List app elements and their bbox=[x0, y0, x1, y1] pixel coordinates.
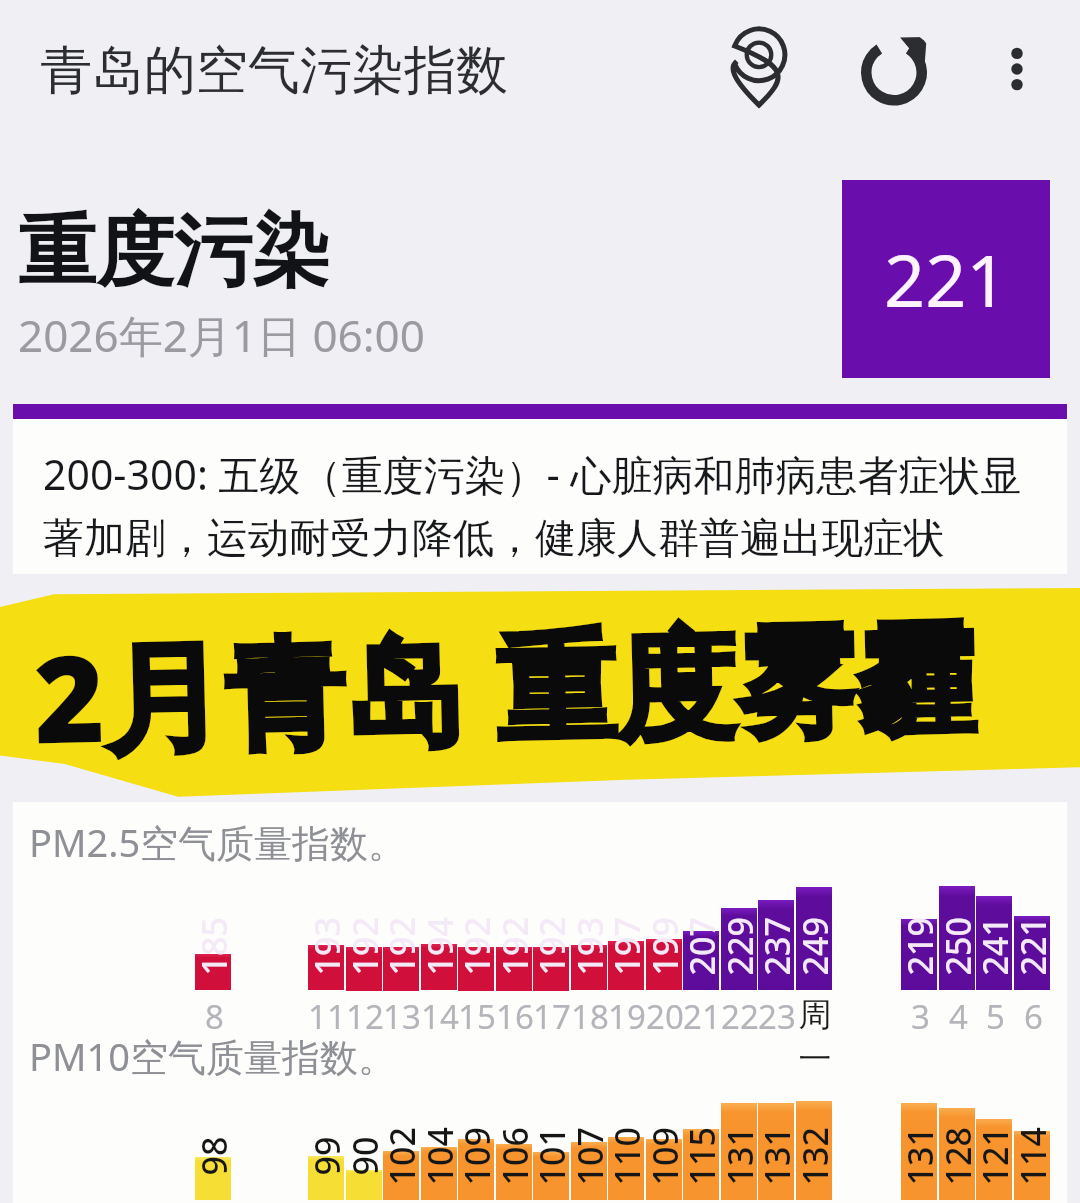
staticText: 250 bbox=[934, 916, 980, 975]
staticText: 192 bbox=[453, 916, 499, 975]
staticText: 98 bbox=[190, 1136, 236, 1175]
staticText: 114 bbox=[1009, 1126, 1055, 1185]
staticText: 107 bbox=[566, 1126, 612, 1185]
staticText: 192 bbox=[491, 916, 537, 975]
staticText: 109 bbox=[453, 1126, 499, 1185]
staticText: 192 bbox=[341, 916, 387, 975]
staticText: PM2.5空气质量指数。 bbox=[29, 816, 407, 868]
staticText: 128 bbox=[934, 1126, 980, 1185]
staticText: 185 bbox=[190, 916, 236, 975]
staticText: 221 bbox=[884, 230, 1008, 328]
staticText: 17 bbox=[533, 994, 571, 1039]
staticText: 237 bbox=[753, 916, 799, 975]
staticText: 重度污染 bbox=[18, 203, 330, 301]
staticText: 131 bbox=[753, 1126, 799, 1185]
staticText: 132 bbox=[791, 1126, 837, 1185]
staticText: 周一 bbox=[786, 994, 844, 1080]
staticText: 22 bbox=[721, 994, 759, 1039]
staticText: 199 bbox=[641, 916, 687, 975]
staticText: 192 bbox=[528, 916, 574, 975]
staticText: 16 bbox=[496, 994, 534, 1039]
staticText: 青岛的空气污染指数 bbox=[40, 38, 508, 104]
staticText: 219 bbox=[896, 916, 942, 975]
staticText: 3 bbox=[911, 994, 930, 1039]
staticText: 19 bbox=[608, 994, 646, 1039]
button[interactable]: Location bbox=[716, 26, 802, 112]
staticText: 249 bbox=[791, 916, 837, 975]
staticText: 12 bbox=[346, 994, 384, 1039]
staticText: 207 bbox=[678, 916, 724, 975]
staticText: 115 bbox=[678, 1126, 724, 1185]
staticText: 221 bbox=[1009, 916, 1055, 975]
staticText: 106 bbox=[491, 1126, 537, 1185]
button[interactable]: PM2.5空气质量指数。 bbox=[13, 802, 1067, 1203]
staticText: 109 bbox=[641, 1126, 687, 1185]
staticText: 2月青岛 重度雾霾 bbox=[32, 592, 978, 779]
staticText: 194 bbox=[416, 916, 462, 975]
staticText: 5 bbox=[986, 994, 1005, 1039]
staticText: 6 bbox=[1024, 994, 1043, 1039]
button[interactable]: Refresh bbox=[852, 28, 936, 112]
staticText: 23 bbox=[758, 994, 796, 1039]
staticText: 13 bbox=[383, 994, 421, 1039]
staticText: 192 bbox=[378, 916, 424, 975]
staticText: 131 bbox=[716, 1126, 762, 1185]
staticText: PM10空气质量指数。 bbox=[29, 1030, 396, 1082]
staticText: 193 bbox=[303, 916, 349, 975]
staticText: 102 bbox=[378, 1126, 424, 1185]
staticText: 241 bbox=[971, 916, 1017, 975]
button[interactable]: 200-300: 五级（重度污染）- 心脏病和肺病患者症状显著加剧，运动耐受力降… bbox=[13, 404, 1067, 574]
staticText: 4 bbox=[949, 994, 968, 1039]
staticText: 18 bbox=[571, 994, 609, 1039]
staticText: 121 bbox=[971, 1126, 1017, 1185]
staticText: 90 bbox=[341, 1136, 387, 1175]
staticText: 104 bbox=[416, 1126, 462, 1185]
staticText: 131 bbox=[896, 1126, 942, 1185]
staticText: 14 bbox=[421, 994, 459, 1039]
staticText: 193 bbox=[566, 916, 612, 975]
staticText: 110 bbox=[603, 1126, 649, 1185]
staticText: 200-300: 五级（重度污染）- 心脏病和肺病患者症状显著加剧，运动耐受力降… bbox=[43, 446, 1053, 564]
staticText: 11 bbox=[308, 994, 346, 1039]
staticText: 15 bbox=[458, 994, 496, 1039]
staticText: 101 bbox=[528, 1126, 574, 1185]
button[interactable]: 221 bbox=[842, 180, 1050, 378]
staticText: 21 bbox=[683, 994, 721, 1039]
button[interactable]: 2月青岛 重度雾霾 bbox=[0, 588, 1080, 800]
staticText: 20 bbox=[646, 994, 684, 1039]
staticText: 197 bbox=[603, 916, 649, 975]
staticText: 99 bbox=[303, 1136, 349, 1175]
staticText: 2026年2月1日 06:00 bbox=[18, 305, 425, 365]
staticText: 8 bbox=[205, 994, 224, 1039]
staticText: 229 bbox=[716, 916, 762, 975]
button[interactable]: More options bbox=[978, 30, 1056, 108]
